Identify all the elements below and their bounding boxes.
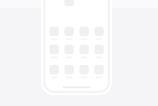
button[interactable]: App 1 bbox=[49, 27, 59, 36]
button[interactable]: App 10 bbox=[64, 65, 74, 74]
button[interactable]: App 4 bbox=[94, 27, 104, 36]
button[interactable]: App 6 bbox=[64, 45, 74, 54]
button[interactable]: App 8 bbox=[94, 45, 104, 54]
button[interactable]: App 11 bbox=[79, 65, 89, 74]
button[interactable]: App 5 bbox=[49, 45, 59, 54]
button[interactable]: App 9 bbox=[49, 65, 59, 74]
button[interactable]: App bbox=[64, 0, 74, 6]
button[interactable]: App 7 bbox=[79, 45, 89, 54]
button[interactable]: App 12 bbox=[94, 65, 104, 74]
button[interactable]: App 2 bbox=[64, 27, 74, 36]
button[interactable]: App 3 bbox=[79, 27, 89, 36]
